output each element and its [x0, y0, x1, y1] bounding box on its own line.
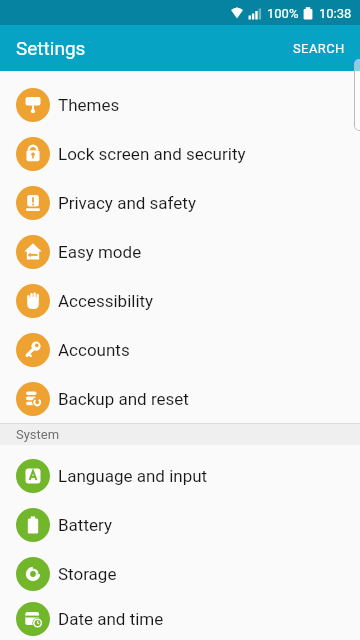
staticText: Backup and reset [58, 389, 189, 409]
staticText: Language and input [58, 466, 208, 486]
staticText: 100% [267, 6, 299, 21]
button[interactable]: Accounts [0, 325, 360, 374]
staticText: Privacy and safety [58, 193, 196, 213]
button[interactable]: Battery [0, 500, 360, 549]
button[interactable]: Easy mode [0, 227, 360, 276]
button[interactable]: Accessibility [0, 276, 360, 325]
staticText: Lock screen and security [58, 144, 246, 164]
staticText: Settings [16, 37, 86, 59]
button[interactable]: Date and time [0, 598, 360, 640]
staticText: Easy mode [58, 242, 142, 262]
staticText: Storage [58, 564, 117, 584]
staticText: Battery [58, 515, 112, 535]
staticText: Accounts [58, 340, 130, 360]
staticText: 10:38 [319, 6, 352, 21]
staticText: Date and time [58, 609, 164, 629]
staticText: System [16, 427, 60, 442]
button[interactable]: Language and input [0, 451, 360, 500]
staticText: Themes [58, 95, 120, 115]
staticText: Accessibility [58, 291, 154, 311]
staticText: SEARCH [293, 41, 345, 56]
button[interactable]: Themes [0, 80, 360, 129]
button[interactable]: Storage [0, 549, 360, 598]
button[interactable]: Backup and reset [0, 374, 360, 423]
button[interactable]: Privacy and safety [0, 178, 360, 227]
button[interactable]: Lock screen and security [0, 129, 360, 178]
button[interactable]: SEARCH [278, 29, 360, 68]
